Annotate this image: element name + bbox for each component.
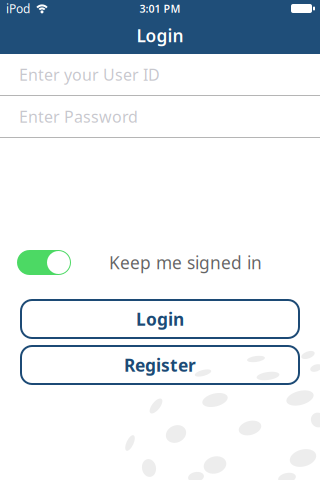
staticText: Keep me signed in: [109, 251, 262, 274]
staticText: Login: [136, 24, 183, 47]
button[interactable]: Enter your User ID: [0, 54, 320, 95]
button[interactable]: Keep me signed in: [17, 250, 71, 275]
staticText: 3:01 PM: [139, 1, 180, 16]
staticText: Login: [136, 307, 184, 330]
button[interactable]: Enter Password: [0, 96, 320, 137]
staticText: Enter your User ID: [19, 64, 160, 85]
staticText: Register: [124, 353, 196, 376]
button[interactable]: Register: [20, 345, 300, 385]
button[interactable]: Login: [20, 299, 300, 339]
staticText: iPod: [6, 0, 30, 16]
staticText: Enter Password: [19, 106, 138, 127]
